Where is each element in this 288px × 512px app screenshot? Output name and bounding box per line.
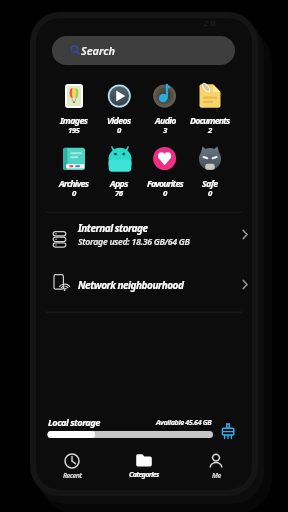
staticText: Favourites [147, 178, 183, 190]
staticText: 2 [208, 125, 212, 136]
button[interactable] [187, 80, 232, 135]
button[interactable] [46, 214, 252, 261]
staticText: 3 [163, 125, 167, 136]
staticText: 0 [72, 188, 76, 199]
staticText: Safe [202, 178, 218, 190]
button[interactable] [142, 143, 187, 198]
button[interactable] [46, 264, 252, 309]
button[interactable] [52, 36, 235, 65]
staticText: Internal storage [78, 221, 148, 235]
button[interactable] [220, 422, 237, 441]
staticText: Images [60, 115, 88, 127]
staticText: Recent [63, 471, 82, 480]
staticText: Storage used: 18.36 GB/64 GB [78, 236, 190, 248]
button[interactable] [120, 450, 168, 484]
staticText: 0 [208, 188, 212, 199]
staticText: Network neighbourhood [78, 278, 184, 292]
staticText: Me [212, 471, 221, 480]
staticText: Local storage [48, 416, 100, 429]
staticText: Documents [190, 115, 230, 127]
button[interactable] [97, 80, 142, 135]
staticText: Search [81, 43, 116, 58]
staticText: 2:18 [204, 19, 216, 29]
button[interactable] [142, 80, 187, 135]
button[interactable] [51, 143, 96, 198]
staticText: Archives [59, 178, 89, 190]
staticText: Apps [110, 178, 128, 190]
staticText: Categories [129, 470, 159, 480]
staticText: 0 [117, 125, 121, 136]
button[interactable]: Search [52, 36, 235, 65]
staticText: Videos [107, 115, 131, 127]
staticText: Available 45.64 GB [156, 417, 212, 427]
staticText: Audio [155, 115, 176, 127]
button[interactable] [192, 450, 240, 484]
button[interactable] [48, 450, 96, 484]
button[interactable] [51, 80, 96, 135]
staticText: 76 [115, 188, 123, 199]
staticText: 195 [68, 125, 80, 136]
button[interactable] [97, 143, 142, 198]
button[interactable] [187, 143, 232, 198]
staticText: 0 [163, 188, 167, 199]
